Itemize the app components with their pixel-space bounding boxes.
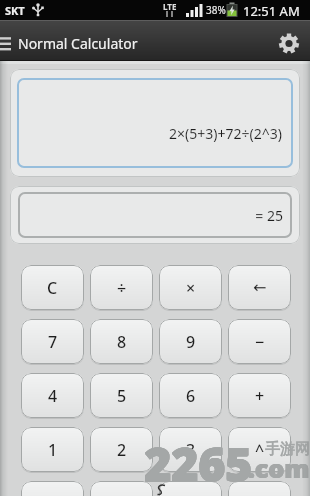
staticText: 1 <box>48 439 58 461</box>
staticText: ÷ <box>117 277 127 299</box>
staticText: 4 <box>48 385 58 407</box>
staticText: 2265 <box>144 433 252 496</box>
button[interactable]: 9 <box>159 319 222 364</box>
staticText: Normal Calculator <box>18 34 138 53</box>
staticText: × <box>186 277 196 299</box>
staticText: 2×(5+3)+72÷(2^3) <box>10 124 282 143</box>
staticText: 3 <box>186 439 196 461</box>
button[interactable] <box>274 28 304 58</box>
button[interactable]: 3 <box>159 427 222 472</box>
staticText: SKT <box>5 3 25 18</box>
staticText: LTE <box>163 1 177 12</box>
button[interactable]: . <box>159 481 222 496</box>
button[interactable]: 2×(5+3)+72÷(2^3) <box>10 69 300 177</box>
staticText: 8 <box>117 331 127 353</box>
button[interactable]: C <box>21 265 84 310</box>
button[interactable]: ^ <box>228 427 291 472</box>
staticText: 2265 <box>144 432 252 495</box>
staticText: 手游网 <box>265 440 310 459</box>
button[interactable]: 4 <box>21 373 84 418</box>
button[interactable]: ( <box>21 481 84 496</box>
staticText: .com <box>248 451 310 485</box>
button[interactable]: 1 <box>21 427 84 472</box>
button[interactable]: ) <box>90 481 153 496</box>
staticText: .com <box>247 451 309 485</box>
button[interactable]: = <box>228 481 291 496</box>
button[interactable]: 2 <box>90 427 153 472</box>
button[interactable]: 6 <box>159 373 222 418</box>
staticText: .com <box>248 451 310 485</box>
button[interactable]: 7 <box>21 319 84 364</box>
button[interactable] <box>0 20 14 61</box>
button[interactable]: − <box>228 319 291 364</box>
staticText: 2265 <box>145 432 253 495</box>
button[interactable]: + <box>228 373 291 418</box>
staticText: 2265 <box>144 432 252 495</box>
button[interactable]: × <box>159 265 222 310</box>
staticText: C <box>47 277 58 299</box>
staticText: 9 <box>186 331 196 353</box>
button[interactable]: ← <box>228 265 291 310</box>
staticText: 2265 <box>144 433 252 496</box>
staticText: = 25 <box>10 206 283 225</box>
staticText: ^ <box>255 439 265 461</box>
button[interactable]: ÷ <box>90 265 153 310</box>
staticText: − <box>255 331 265 353</box>
staticText: 2 <box>117 439 127 461</box>
staticText: 38% <box>206 3 226 17</box>
staticText: 12:51 AM <box>243 2 300 20</box>
staticText: 7 <box>48 331 58 353</box>
button[interactable]: 5 <box>90 373 153 418</box>
staticText: 5 <box>117 385 127 407</box>
button[interactable]: 8 <box>90 319 153 364</box>
staticText: + <box>255 385 265 407</box>
staticText: 6 <box>186 385 196 407</box>
staticText: ← <box>253 278 267 297</box>
staticText: 2265 <box>145 432 253 495</box>
